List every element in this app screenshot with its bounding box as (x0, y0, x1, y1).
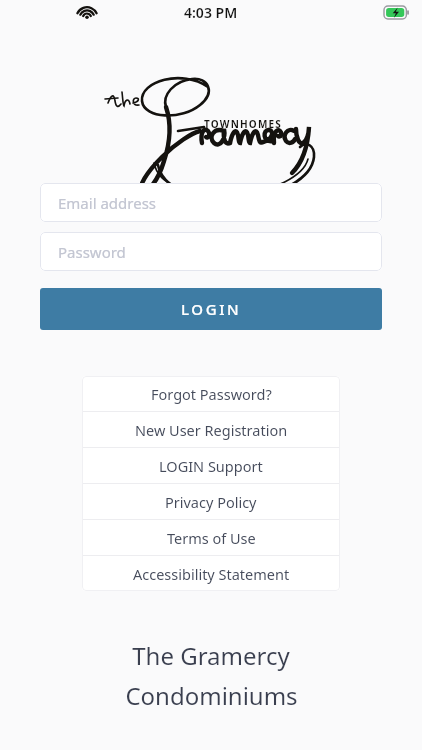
staticText: New User Registration (135, 420, 288, 440)
staticText: LOGIN Support (159, 456, 263, 476)
button[interactable]: Forgot Password? (82, 376, 340, 411)
button[interactable]: Privacy Policy (82, 484, 340, 519)
button[interactable]: Password (40, 232, 382, 271)
button[interactable]: Accessibility Statement (82, 556, 340, 591)
staticText: 4:03 PM (184, 3, 238, 22)
button[interactable]: Terms of Use (82, 520, 340, 555)
staticText: LOGIN (181, 299, 242, 319)
button[interactable]: New User Registration (82, 412, 340, 447)
staticText: Terms of Use (167, 528, 256, 548)
staticText: The Gramercy (132, 639, 290, 672)
staticText: TOWNHOMES (204, 117, 283, 131)
staticText: Privacy Policy (165, 492, 257, 512)
staticText: Password (58, 242, 126, 262)
staticText: Condominiums (125, 679, 298, 712)
button[interactable]: LOGIN Support (82, 448, 340, 483)
staticText: Accessibility Statement (133, 564, 290, 584)
staticText: Forgot Password? (151, 384, 272, 404)
staticText: Email address (58, 193, 157, 213)
button[interactable]: Email address (40, 183, 382, 222)
button[interactable]: LOGIN (40, 288, 382, 330)
